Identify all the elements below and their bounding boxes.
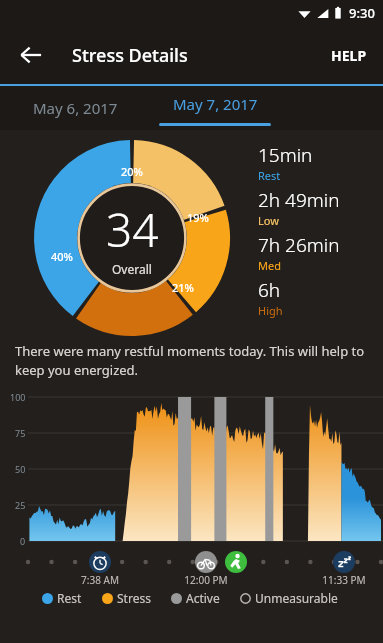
staticText: 6h (258, 277, 281, 303)
staticText: 0 (20, 535, 26, 547)
staticText: 20% (121, 164, 143, 179)
button[interactable]: May 6, 2017 (0, 86, 150, 130)
staticText: 21% (172, 280, 194, 295)
staticText: 19% (187, 210, 209, 225)
staticText: 34 (106, 198, 159, 261)
button[interactable]: Stress (102, 590, 151, 606)
staticText: There were many restful moments today. T… (15, 342, 365, 379)
staticText: 100 (10, 391, 26, 403)
staticText: Stress (117, 590, 151, 606)
staticText: 11:33 PM (322, 573, 366, 587)
button[interactable]: Alarm (89, 551, 111, 573)
staticText: 9:30 (349, 4, 375, 22)
staticText: May 7, 2017 (173, 94, 258, 114)
staticText: Unmeasurable (255, 590, 338, 606)
button[interactable]: Cycling (195, 551, 217, 573)
staticText: 15min (258, 142, 313, 168)
staticText: Med (258, 258, 281, 273)
staticText: Low (258, 213, 279, 228)
button[interactable]: Unmeasurable (240, 590, 338, 606)
staticText: 75 (15, 427, 26, 439)
staticText: 50 (15, 463, 26, 475)
button[interactable]: HELP (315, 30, 383, 81)
button[interactable]: Sleep (333, 551, 355, 573)
staticText: 40% (51, 249, 73, 264)
staticText: Rest (258, 168, 281, 183)
staticText: Active (186, 590, 220, 606)
button[interactable]: Running (225, 551, 247, 573)
staticText: Rest (57, 590, 82, 606)
button[interactable]: Active (171, 590, 220, 606)
staticText: May 6, 2017 (33, 98, 118, 118)
staticText: 7:38 AM (81, 573, 119, 587)
staticText: 25 (15, 499, 26, 511)
button[interactable]: Rest (42, 590, 82, 606)
staticText: 7h 26min (258, 232, 340, 258)
button[interactable]: May 7, 2017 (140, 86, 290, 130)
button[interactable]: Back (8, 32, 54, 78)
staticText: Stress Details (72, 43, 188, 68)
staticText: Overall (112, 261, 152, 277)
staticText: 2h 49min (258, 187, 340, 213)
staticText: 12:00 PM (184, 573, 228, 587)
staticText: HELP (331, 46, 367, 65)
staticText: High (258, 303, 283, 318)
